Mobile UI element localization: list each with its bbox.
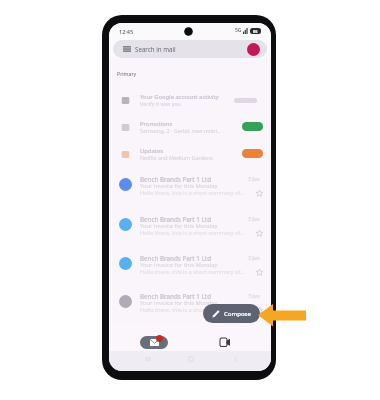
button[interactable]: Bench Brands Part 1 Ltd	[109, 164, 271, 203]
staticText: 3 Jun	[248, 293, 260, 300]
staticText: Hello there, this is a short summary of…	[140, 189, 245, 197]
button[interactable]: Navigation	[231, 354, 241, 364]
button[interactable]: Bench Brands Part 1 Ltd	[109, 243, 271, 282]
staticText: Your invoice for this Monday	[140, 299, 218, 307]
staticText: Bench Brands Part 1 Ltd	[140, 215, 211, 223]
staticText: Your invoice for this Monday	[140, 222, 218, 230]
button[interactable]: Your Google account activity	[109, 86, 271, 113]
button[interactable]: Navigation	[186, 354, 196, 364]
staticText: Your Google account activity	[140, 93, 219, 101]
button[interactable]: Updates	[109, 140, 271, 167]
staticText: Bench Brands Part 1 Ltd	[140, 254, 211, 262]
button[interactable]: Account	[247, 43, 260, 56]
staticText: Primary	[117, 70, 137, 77]
staticText: Netflix and Medium Gardens	[140, 154, 213, 161]
staticText: Search in mail	[135, 45, 176, 53]
button[interactable]: Bench Brands Part 1 Ltd	[109, 281, 271, 320]
staticText: Samsung, 2 · Gerbil, new mobi…	[140, 127, 222, 134]
staticText: 12:45	[119, 28, 134, 35]
staticText: Hello there, this is a short summary of…	[140, 229, 245, 237]
staticText: 3 Jun	[248, 216, 260, 223]
button[interactable]: Bench Brands Part 1 Ltd	[109, 204, 271, 243]
staticText: Bench Brands Part 1 Ltd	[140, 292, 211, 300]
staticText: Your invoice for this Monday	[140, 182, 218, 190]
staticText: Verify it was you	[140, 100, 182, 107]
button[interactable]: Promotions	[109, 113, 271, 140]
staticText: 3 Jun	[248, 176, 260, 183]
staticText: Your invoice for this Monday	[140, 261, 218, 269]
button[interactable]: Compose	[203, 304, 260, 323]
button[interactable]: Mail	[140, 336, 168, 349]
button[interactable]: Navigation	[143, 354, 153, 364]
staticText: 3 Jun	[248, 255, 260, 262]
staticText: Hello there, this is a short summary of…	[140, 268, 245, 276]
staticText: 85	[253, 29, 258, 34]
staticText: Compose	[224, 310, 251, 318]
button[interactable]: Search in mail	[113, 40, 267, 58]
staticText: Hello there, this is a short summary of…	[140, 306, 245, 314]
staticText: Updates	[140, 147, 164, 155]
staticText: Bench Brands Part 1 Ltd	[140, 175, 211, 183]
button[interactable]: Meet	[218, 336, 232, 350]
staticText: 5G	[235, 27, 242, 34]
staticText: Promotions	[140, 120, 173, 128]
